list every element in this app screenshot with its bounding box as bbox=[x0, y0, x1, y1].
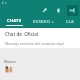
button[interactable]: CHATS bbox=[0, 16, 28, 28]
staticText: ESTADO + bbox=[33, 19, 55, 25]
staticText: CHATS bbox=[7, 18, 22, 24]
staticText: Mensaje reciente del contacto aquí bbox=[5, 41, 64, 46]
button[interactable]: LLA bbox=[60, 16, 80, 28]
other: Emoji bbox=[5, 66, 18, 73]
button[interactable]: Chat de Oficial bbox=[0, 28, 80, 48]
staticText: Chat de Oficial bbox=[5, 31, 39, 37]
staticText: LLA bbox=[66, 19, 75, 25]
button[interactable]: Cámara bbox=[39, 5, 50, 16]
button[interactable]: Mauro bbox=[0, 59, 80, 73]
button[interactable]: ESTADO + bbox=[28, 16, 60, 28]
staticText: Mauro bbox=[4, 59, 16, 64]
button[interactable]: Buscar bbox=[53, 5, 64, 16]
button[interactable]: Más opciones bbox=[67, 5, 78, 16]
